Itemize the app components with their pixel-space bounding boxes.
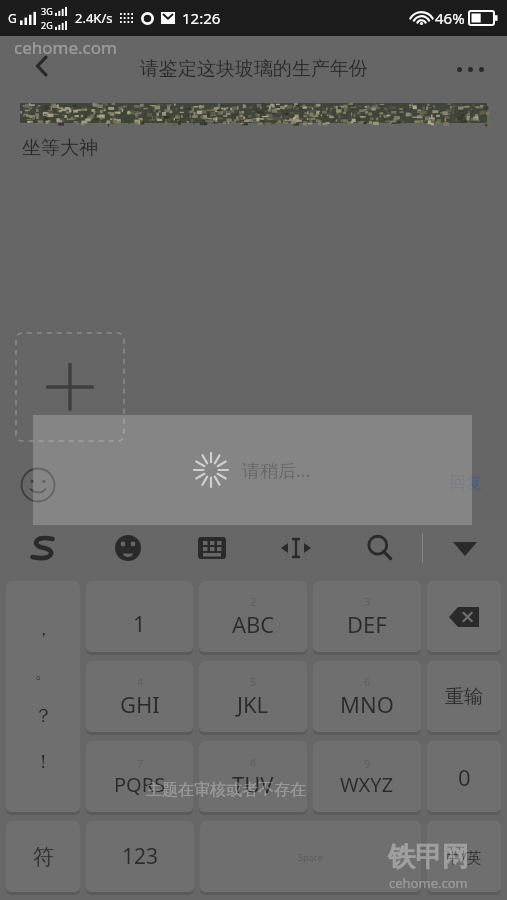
- button[interactable]: More options: [447, 49, 493, 89]
- staticText: 6: [364, 674, 371, 689]
- staticText: 。: [35, 662, 52, 683]
- button[interactable]: 符: [6, 821, 80, 892]
- staticText: 4: [137, 674, 144, 689]
- staticText: MNO: [340, 689, 394, 719]
- button[interactable]: 5: [199, 661, 307, 732]
- staticText: JKL: [237, 689, 269, 719]
- button[interactable]: Cursor move: [254, 520, 338, 576]
- button[interactable]: 重输: [427, 661, 501, 732]
- button[interactable]: Search: [338, 520, 422, 576]
- staticText: 请稍后...: [242, 458, 311, 483]
- button[interactable]: 123: [86, 821, 194, 892]
- button[interactable]: Space: [200, 821, 421, 892]
- staticText: 3G: [41, 5, 53, 17]
- staticText: 46%: [435, 8, 465, 28]
- button[interactable]: 中/英: [427, 821, 501, 892]
- staticText: TUV: [232, 769, 274, 799]
- staticText: 0: [458, 762, 471, 792]
- button[interactable]: 8: [199, 741, 307, 812]
- staticText: 2.4K/s: [75, 9, 113, 27]
- button[interactable]: Emoji: [20, 467, 56, 503]
- staticText: DEF: [347, 609, 387, 639]
- button[interactable]: Sogou input method: [0, 520, 85, 576]
- button[interactable]: Keyboard layout: [170, 520, 254, 576]
- staticText: cehome.com: [14, 36, 117, 59]
- staticText: 2: [250, 594, 257, 609]
- staticText: 符: [33, 844, 54, 870]
- staticText: 中/英: [446, 847, 482, 867]
- staticText: PQRS: [114, 771, 166, 798]
- button[interactable]: 4: [86, 661, 193, 732]
- staticText: 5: [250, 674, 257, 689]
- button[interactable]: ，: [6, 581, 80, 812]
- button[interactable]: Add photo: [16, 333, 124, 441]
- staticText: 123: [122, 842, 159, 871]
- staticText: 主题在审核或者不存在: [146, 780, 306, 800]
- staticText: 12:26: [182, 8, 221, 28]
- staticText: 2G: [41, 19, 53, 31]
- staticText: 3: [364, 594, 371, 609]
- button[interactable]: Back: [22, 46, 62, 86]
- staticText: 铁甲网: [388, 840, 469, 874]
- staticText: 重输: [445, 685, 483, 709]
- staticText: 1: [133, 608, 146, 638]
- button[interactable]: 3: [313, 581, 421, 652]
- button[interactable]: 2: [199, 581, 307, 652]
- staticText: G: [8, 10, 17, 26]
- button[interactable]: [427, 581, 501, 652]
- staticText: cehome.com: [389, 874, 468, 892]
- staticText: 9: [364, 756, 371, 771]
- staticText: Space: [298, 851, 323, 863]
- staticText: 请鉴定这块玻璃的生产年份: [140, 57, 368, 81]
- button[interactable]: 7: [86, 741, 193, 812]
- staticText: GHI: [120, 689, 160, 719]
- button[interactable]: Emoji: [85, 520, 170, 576]
- button[interactable]: 0: [427, 741, 501, 812]
- button[interactable]: 回复: [450, 473, 482, 493]
- staticText: WXYZ: [340, 771, 394, 798]
- button[interactable]: Hide keyboard: [423, 520, 507, 576]
- staticText: ！: [34, 750, 53, 774]
- staticText: ，: [35, 619, 52, 640]
- staticText: ？: [34, 704, 53, 728]
- staticText: ABC: [232, 609, 275, 639]
- button[interactable]: 6: [313, 661, 421, 732]
- staticText: 7: [137, 756, 144, 771]
- staticText: 8: [250, 754, 257, 769]
- button[interactable]: 1: [86, 581, 193, 652]
- staticText: 坐等大神: [22, 136, 98, 160]
- button[interactable]: 9: [313, 741, 421, 812]
